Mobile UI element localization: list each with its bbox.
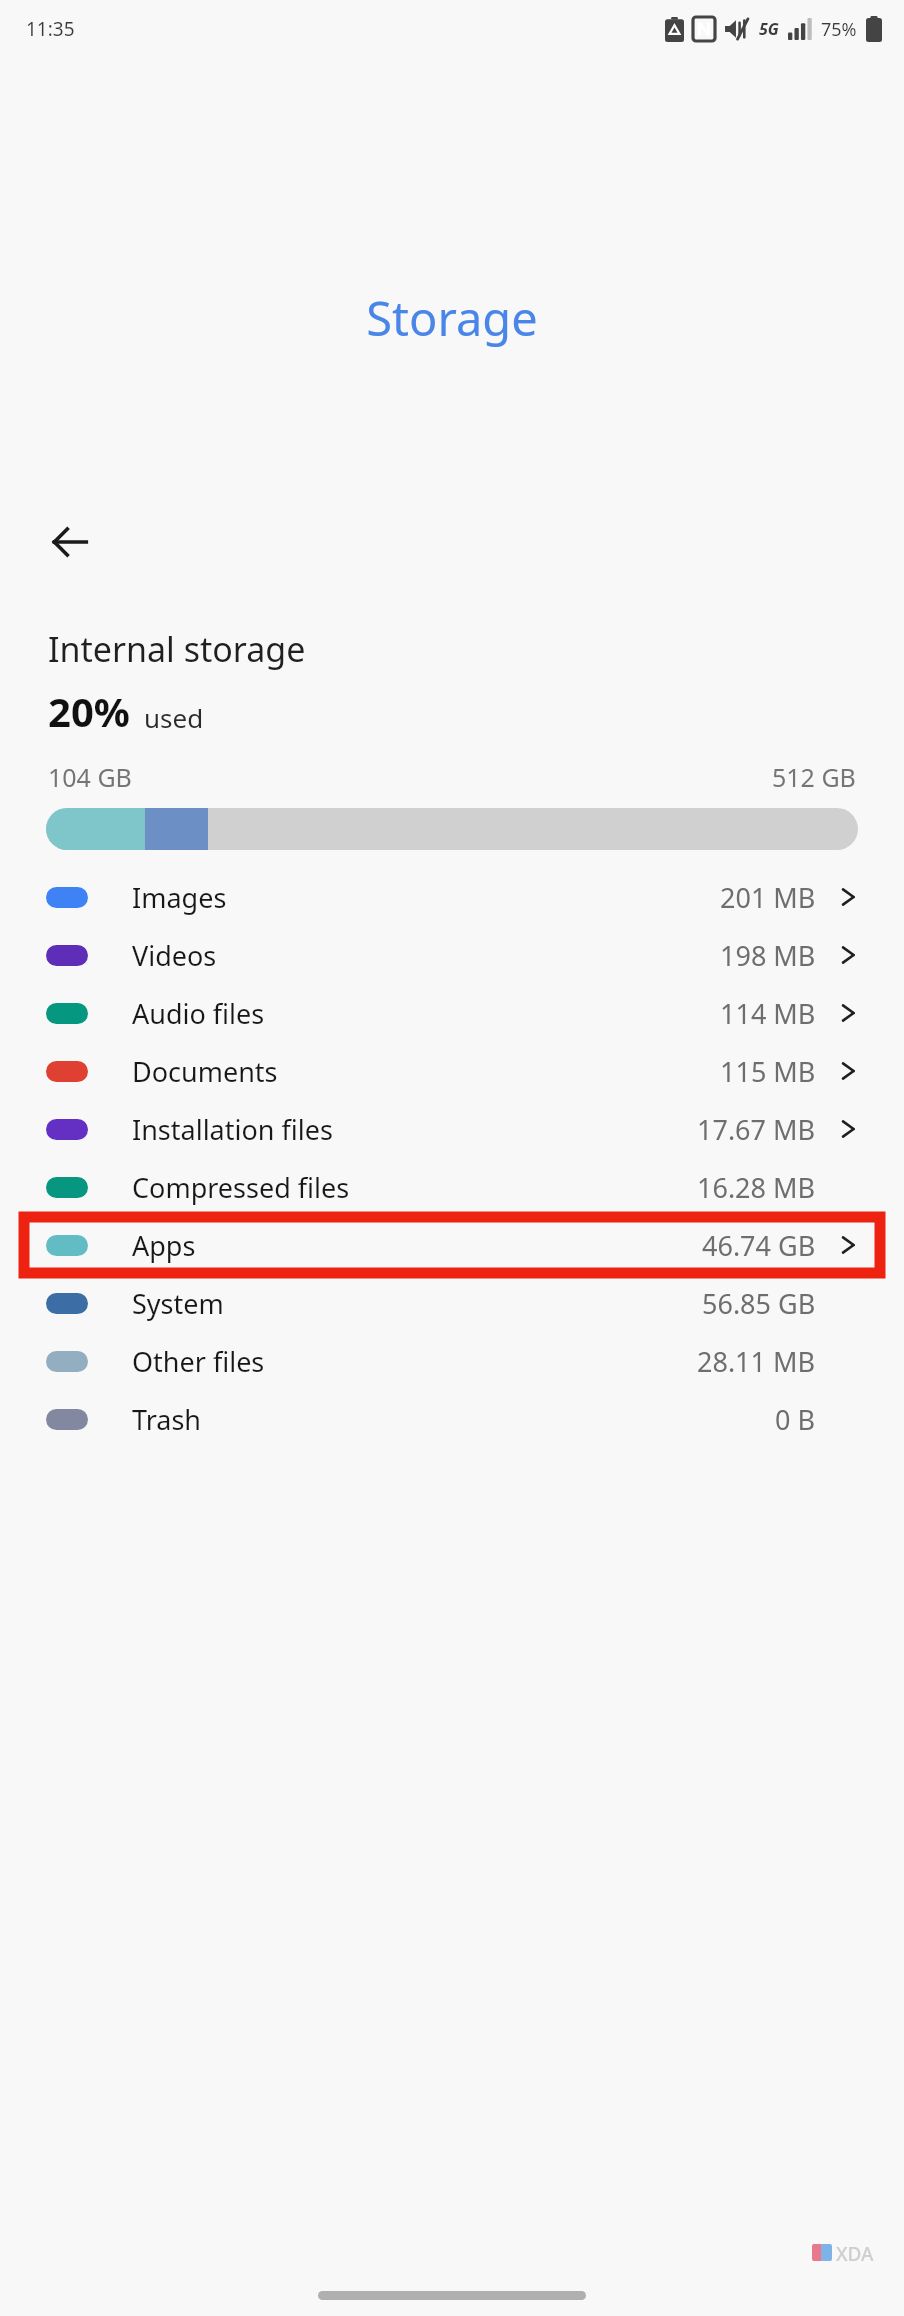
staticText: Images xyxy=(132,879,227,916)
staticText: Other files xyxy=(132,1343,265,1380)
button[interactable]: Audio files xyxy=(0,984,904,1042)
staticText: 5G xyxy=(759,18,779,40)
button[interactable]: Trash xyxy=(0,1390,904,1448)
staticText: 20% xyxy=(48,684,130,738)
button[interactable]: Installation files xyxy=(0,1100,904,1158)
staticText: Apps xyxy=(132,1227,196,1264)
staticText: 512 GB xyxy=(772,760,856,794)
button[interactable]: Compressed files xyxy=(0,1158,904,1216)
staticText: Trash xyxy=(132,1401,202,1438)
staticText: 115 MB xyxy=(720,1053,816,1090)
staticText: 56.85 GB xyxy=(702,1285,816,1322)
button[interactable]: Apps xyxy=(0,1216,904,1274)
button[interactable]: Back xyxy=(44,516,96,568)
staticText: Compressed files xyxy=(132,1169,350,1206)
staticText: System xyxy=(132,1285,224,1322)
staticText: Audio files xyxy=(132,995,265,1032)
staticText: 17.67 MB xyxy=(697,1111,816,1148)
staticText: used xyxy=(144,700,204,735)
button[interactable]: Images xyxy=(0,868,904,926)
button[interactable]: System xyxy=(0,1274,904,1332)
staticText: 46.74 GB xyxy=(702,1227,816,1264)
button[interactable]: Videos xyxy=(0,926,904,984)
staticText: 104 GB xyxy=(48,760,132,794)
staticText: Installation files xyxy=(132,1111,333,1148)
staticText: Internal storage xyxy=(48,626,306,672)
staticText: Storage xyxy=(0,286,904,350)
staticText: 11:35 xyxy=(26,16,75,42)
staticText: 0 B xyxy=(775,1401,816,1438)
staticText: 75% xyxy=(821,17,857,42)
staticText: XDA xyxy=(836,2241,874,2267)
staticText: 114 MB xyxy=(720,995,816,1032)
staticText: 201 MB xyxy=(720,879,816,916)
staticText: 198 MB xyxy=(720,937,816,974)
staticText: 28.11 MB xyxy=(697,1343,816,1380)
button[interactable]: Documents xyxy=(0,1042,904,1100)
staticText: Videos xyxy=(132,937,217,974)
staticText: Documents xyxy=(132,1053,278,1090)
staticText: 16.28 MB xyxy=(697,1169,816,1206)
button[interactable]: Other files xyxy=(0,1332,904,1390)
